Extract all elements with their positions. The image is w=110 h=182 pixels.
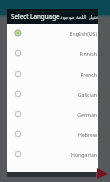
button[interactable]: Hebrew xyxy=(7,124,98,144)
staticText: Hebrew xyxy=(29,131,97,138)
staticText: Select Language xyxy=(11,12,60,21)
staticText: اختيار اللغة موجود xyxy=(60,13,98,20)
staticText: Galician xyxy=(29,91,97,98)
button[interactable]: French xyxy=(7,64,98,84)
staticText: Finnish xyxy=(29,50,97,57)
staticText: German xyxy=(29,111,97,118)
button[interactable]: German xyxy=(7,104,98,124)
button[interactable]: Galician xyxy=(7,84,98,104)
staticText: English(US) xyxy=(29,30,97,37)
button[interactable]: Finnish xyxy=(7,43,98,63)
button[interactable]: Select Language xyxy=(7,9,98,24)
staticText: Hungarian xyxy=(29,151,97,158)
button[interactable]: English(US) xyxy=(7,24,98,43)
button[interactable]: Hungarian xyxy=(7,144,98,164)
staticText: French xyxy=(29,71,97,78)
